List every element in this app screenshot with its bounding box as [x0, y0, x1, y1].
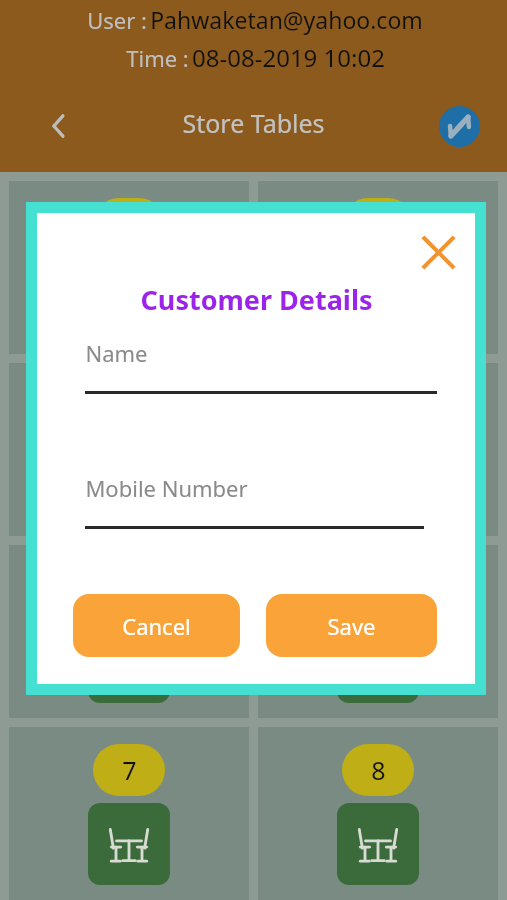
- button[interactable]: 3: [9, 363, 249, 536]
- staticText: 6: [371, 571, 386, 605]
- staticText: 1: [122, 207, 137, 241]
- button[interactable]: Refresh: [437, 104, 481, 148]
- staticText: User :: [84, 5, 150, 35]
- button[interactable]: 6: [258, 545, 498, 718]
- staticText: 08-08-2019 10:02: [192, 41, 385, 74]
- button[interactable]: 1: [9, 181, 249, 354]
- staticText: 4: [371, 389, 386, 423]
- staticText: 8: [371, 753, 386, 787]
- staticText: Mobile Number: [85, 473, 248, 503]
- button[interactable]: 7: [9, 727, 249, 900]
- staticText: 5: [122, 571, 137, 605]
- button[interactable]: Back: [36, 103, 82, 149]
- staticText: Pahwaketan@yahoo.com: [150, 4, 423, 35]
- button[interactable]: Close: [413, 227, 463, 277]
- staticText: 3: [122, 389, 137, 423]
- button[interactable]: Cancel: [73, 594, 240, 657]
- button[interactable]: 5: [9, 545, 249, 718]
- staticText: 2: [371, 207, 386, 241]
- button[interactable]: 2: [258, 181, 498, 354]
- button[interactable]: 8: [258, 727, 498, 900]
- button[interactable]: Save: [266, 594, 437, 657]
- staticText: Customer Details: [140, 281, 373, 318]
- staticText: Cancel: [122, 611, 191, 641]
- staticText: 7: [122, 753, 137, 787]
- button[interactable]: 4: [258, 363, 498, 536]
- staticText: Time :: [123, 43, 192, 73]
- staticText: Store Tables: [182, 106, 325, 140]
- staticText: Name: [85, 338, 148, 368]
- staticText: Save: [327, 611, 376, 641]
